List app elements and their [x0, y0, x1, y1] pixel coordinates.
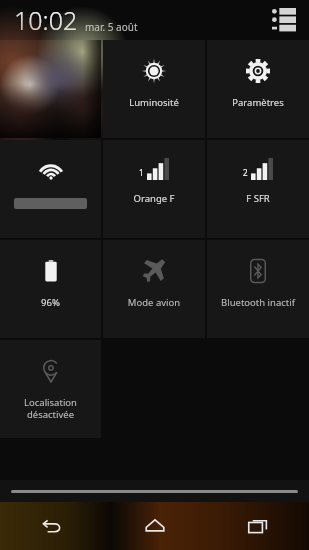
button[interactable]: Bluetooth inactif: [207, 240, 309, 338]
button[interactable]: 96%: [0, 240, 101, 338]
staticText: 2: [243, 167, 248, 178]
button[interactable]: 1: [103, 140, 205, 238]
button[interactable]: Accueil: [103, 502, 206, 550]
staticText: 96%: [2, 296, 99, 309]
button[interactable]: Applications récentes: [206, 502, 309, 550]
staticText: Localisation désactivée: [2, 396, 99, 421]
staticText: Orange F: [105, 192, 203, 205]
staticText: 10:02: [14, 3, 78, 37]
button[interactable]: Notifications: [269, 5, 299, 35]
staticText: mar. 5 août: [85, 20, 138, 34]
staticText: Bluetooth inactif: [209, 296, 307, 309]
staticText: Mode avion: [105, 296, 203, 309]
button[interactable]: Localisation désactivée: [0, 340, 101, 438]
button[interactable]: Utilisateur: [0, 40, 101, 138]
staticText: F SFR: [209, 192, 307, 205]
button[interactable]: Retour: [0, 502, 103, 550]
staticText: 1: [139, 167, 144, 178]
button[interactable]: Wi-Fi: [0, 140, 101, 238]
button[interactable]: Luminosité: [103, 40, 205, 138]
staticText: Luminosité: [105, 96, 203, 109]
staticText: Paramètres: [209, 96, 307, 109]
button[interactable]: Paramètres: [207, 40, 309, 138]
button[interactable]: Mode avion: [103, 240, 205, 338]
button[interactable]: 2: [207, 140, 309, 238]
